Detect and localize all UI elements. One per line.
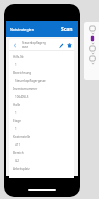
button[interactable]: Notstrategien: [6, 21, 78, 37]
button[interactable]: Arbeitsplatz: [13, 164, 74, 178]
staticText: Notstrategien: [10, 27, 34, 32]
button[interactable]: Bezeichnung: [13, 68, 74, 84]
staticText: Arbeitsplatz: [13, 167, 30, 171]
staticText: Inventarnummer: [13, 87, 38, 91]
staticText: Scan: [61, 26, 73, 33]
button[interactable]: Inventarnummer: [13, 84, 74, 100]
button[interactable]: Scan: [61, 26, 73, 33]
staticText: Halle: [13, 103, 21, 107]
staticText: Bereich: [13, 151, 24, 155]
staticText: Steuerkopflagergasse: [15, 79, 46, 83]
staticText: Etage: [13, 119, 21, 123]
button[interactable]: Etage: [13, 116, 74, 132]
staticText: 411: [15, 143, 21, 147]
button[interactable]: Hilfs-Nr.: [13, 52, 74, 68]
staticText: 1: [15, 111, 17, 115]
button[interactable]: Halle: [13, 100, 74, 116]
button[interactable]: Tool 0: [89, 25, 96, 32]
staticText: 1: [15, 63, 17, 67]
staticText: Kostenstelle: [13, 135, 31, 139]
button[interactable]: Tool 2: [89, 45, 96, 52]
button[interactable]: Tool 1: [89, 35, 96, 42]
staticText: Bezeichnung: [13, 71, 32, 75]
button[interactable]: Back: [9, 40, 20, 50]
button[interactable]: Kostenstelle: [13, 132, 74, 148]
staticText: Steuerkopflagerg asse: [22, 41, 46, 49]
button[interactable]: Delete: [65, 41, 73, 49]
staticText: Hilfs-Nr.: [13, 55, 25, 59]
staticText: G2: [15, 159, 19, 163]
button[interactable]: Edit: [57, 41, 65, 49]
button[interactable]: Bereich: [13, 148, 74, 164]
staticText: 1: [15, 127, 17, 131]
button[interactable]: Tool 3: [89, 55, 96, 62]
staticText: 106405LS: [15, 95, 29, 99]
